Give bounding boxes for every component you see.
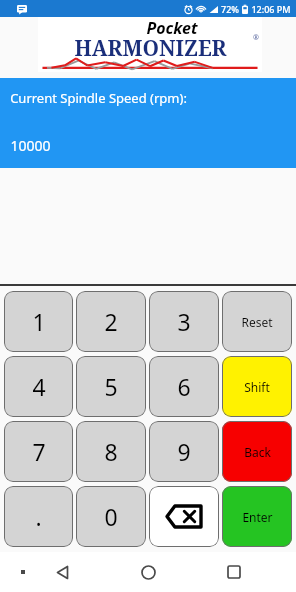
button[interactable]: 7 [4, 421, 73, 482]
button[interactable]: Back [222, 421, 292, 482]
staticText: 12:06 PM [251, 3, 291, 15]
button[interactable]: 1 [4, 291, 73, 352]
button[interactable]: . [4, 486, 73, 547]
button[interactable]: Backspace [149, 486, 219, 547]
staticText: 10000 [10, 136, 51, 155]
button[interactable]: Recent apps [217, 555, 251, 589]
staticText: Enter [242, 509, 273, 525]
staticText: Pocket [146, 17, 198, 39]
staticText: . [35, 501, 42, 532]
staticText: ® [253, 33, 259, 43]
button[interactable]: Home [131, 555, 165, 589]
button[interactable]: Shift [222, 356, 292, 417]
staticText: 9 [177, 436, 191, 467]
button[interactable]: 3 [149, 291, 219, 352]
staticText: 8 [104, 436, 118, 467]
button[interactable]: Reset [222, 291, 292, 352]
button[interactable]: 9 [149, 421, 219, 482]
staticText: 5 [104, 371, 118, 402]
button[interactable]: Hide keyboard [12, 561, 34, 583]
staticText: HARMONIZER [74, 34, 227, 63]
staticText: 0 [104, 501, 118, 532]
staticText: Reset [241, 314, 273, 330]
staticText: 7 [32, 436, 46, 467]
button[interactable]: Back [45, 555, 79, 589]
staticText: 72% [221, 3, 239, 15]
button[interactable]: 2 [76, 291, 146, 352]
button[interactable]: Current Spindle Speed (rpm): [0, 78, 296, 168]
button[interactable]: 5 [76, 356, 146, 417]
staticText: 1 [32, 306, 46, 337]
staticText: 2 [104, 306, 118, 337]
staticText: Shift [244, 379, 270, 395]
button[interactable]: 0 [76, 486, 146, 547]
button[interactable]: Enter [222, 486, 292, 547]
button[interactable]: 4 [4, 356, 73, 417]
staticText: Current Spindle Speed (rpm): [10, 89, 187, 107]
staticText: 3 [177, 306, 191, 337]
staticText: Back [244, 444, 271, 460]
staticText: 6 [177, 371, 191, 402]
button[interactable]: 6 [149, 356, 219, 417]
button[interactable]: 8 [76, 421, 146, 482]
staticText: 4 [32, 371, 46, 402]
